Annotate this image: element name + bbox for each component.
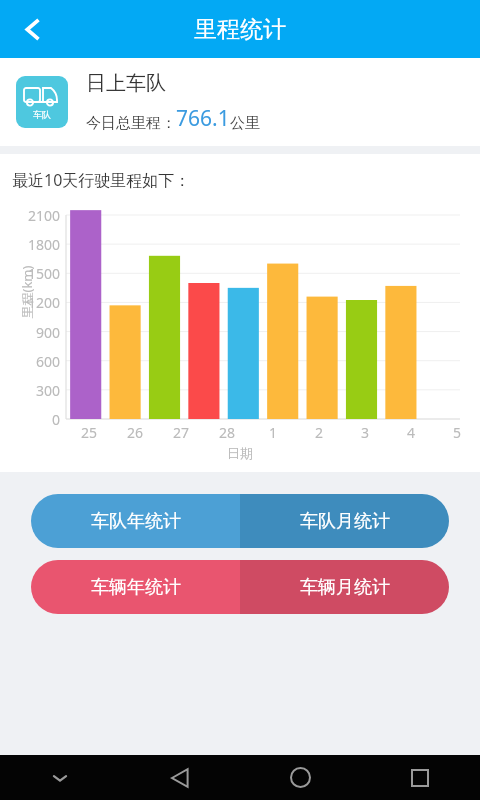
staticText: 车队 xyxy=(33,109,51,120)
staticText: 公里 xyxy=(230,114,260,133)
staticText: 1 xyxy=(250,423,296,442)
staticText: 0 xyxy=(0,410,60,429)
button[interactable]: 车辆月统计 xyxy=(240,560,449,614)
staticText: 2 xyxy=(296,423,342,442)
staticText: 车辆月统计 xyxy=(300,576,390,599)
staticText: 车队年统计 xyxy=(91,510,181,533)
staticText: 2100 xyxy=(0,206,60,225)
staticText: 900 xyxy=(0,323,60,342)
staticText: 车队月统计 xyxy=(300,510,390,533)
button[interactable]: 车辆年统计 xyxy=(31,560,240,614)
staticText: 25 xyxy=(66,423,112,442)
button[interactable]: Home xyxy=(240,755,360,800)
staticText: 日期 xyxy=(0,445,480,461)
staticText: 车辆年统计 xyxy=(91,576,181,599)
staticText: 3 xyxy=(342,423,388,442)
button[interactable]: Hide keyboard xyxy=(0,755,120,800)
staticText: 300 xyxy=(0,381,60,400)
staticText: 5 xyxy=(434,423,480,442)
button[interactable]: Recents xyxy=(360,755,480,800)
staticText: 1800 xyxy=(0,235,60,254)
staticText: 26 xyxy=(112,423,158,442)
button[interactable]: 车队年统计 xyxy=(31,494,240,548)
staticText: 27 xyxy=(158,423,204,442)
button[interactable]: 车队月统计 xyxy=(240,494,449,548)
staticText: 日上车队 xyxy=(86,71,166,96)
staticText: 1500 xyxy=(0,264,60,283)
staticText: 今日总里程： xyxy=(86,114,176,133)
staticText: 766.1 xyxy=(176,104,230,133)
staticText: 28 xyxy=(204,423,250,442)
staticText: 1200 xyxy=(0,293,60,312)
staticText: 600 xyxy=(0,352,60,371)
staticText: 里程(km) xyxy=(17,265,35,318)
button[interactable]: Back xyxy=(0,0,64,58)
staticText: 最近10天行驶里程如下： xyxy=(12,169,191,191)
button[interactable]: Back xyxy=(120,755,240,800)
staticText: 4 xyxy=(388,423,434,442)
staticText: 里程统计 xyxy=(194,15,286,44)
